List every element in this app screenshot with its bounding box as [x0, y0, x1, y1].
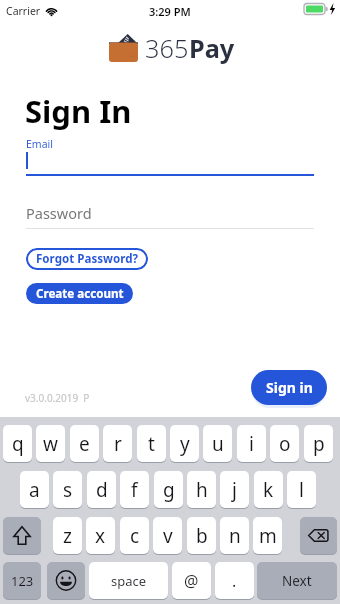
staticText: f: [131, 477, 138, 503]
staticText: Sign In: [25, 90, 132, 132]
staticText: Email: [26, 137, 53, 151]
button[interactable]: m: [253, 517, 282, 554]
button[interactable]: k: [254, 471, 283, 508]
staticText: w: [43, 431, 58, 457]
staticText: b: [196, 523, 208, 549]
staticText: .: [232, 570, 237, 592]
staticText: @: [184, 570, 199, 592]
button[interactable]: b: [187, 517, 216, 554]
staticText: c: [130, 523, 140, 549]
staticText: Carrier: [6, 4, 41, 18]
button[interactable]: .: [215, 562, 254, 599]
staticText: v3.0.0.2019 P: [25, 391, 90, 404]
button[interactable]: a: [20, 471, 49, 508]
staticText: i: [249, 431, 254, 457]
staticText: 3:29 PM: [149, 4, 191, 19]
staticText: g: [163, 477, 175, 503]
button[interactable]: Backspace: [300, 517, 337, 554]
button[interactable]: space: [89, 562, 168, 599]
button[interactable]: Sign in: [251, 370, 327, 405]
button[interactable]: c: [120, 517, 149, 554]
button[interactable]: 123: [3, 562, 41, 599]
staticText: 123: [11, 572, 34, 590]
button[interactable]: Email: [26, 134, 314, 176]
button[interactable]: q: [3, 425, 32, 462]
staticText: z: [63, 523, 72, 549]
button[interactable]: Next: [257, 562, 337, 599]
staticText: k: [263, 477, 274, 503]
staticText: y: [180, 431, 190, 457]
button[interactable]: y: [170, 425, 199, 462]
staticText: p: [313, 431, 325, 457]
button[interactable]: x: [86, 517, 115, 554]
button[interactable]: l: [287, 471, 316, 508]
button[interactable]: h: [187, 471, 216, 508]
staticText: l: [299, 477, 304, 503]
staticText: u: [212, 431, 224, 457]
staticText: a: [29, 477, 40, 503]
button[interactable]: o: [270, 425, 299, 462]
button[interactable]: Forgot Password?: [26, 248, 148, 270]
button[interactable]: v: [153, 517, 182, 554]
staticText: Sign in: [266, 378, 313, 397]
button[interactable]: d: [87, 471, 116, 508]
button[interactable]: u: [203, 425, 232, 462]
button[interactable]: t: [137, 425, 166, 462]
button[interactable]: z: [53, 517, 82, 554]
button[interactable]: Emoji: [47, 562, 85, 599]
staticText: Forgot Password?: [36, 251, 139, 267]
staticText: r: [114, 431, 122, 457]
button[interactable]: e: [70, 425, 99, 462]
button[interactable]: g: [154, 471, 183, 508]
button[interactable]: n: [220, 517, 249, 554]
staticText: d: [96, 477, 108, 503]
button[interactable]: i: [237, 425, 266, 462]
staticText: 365: [145, 31, 189, 65]
button[interactable]: f: [120, 471, 149, 508]
staticText: o: [279, 431, 291, 457]
staticText: Pay: [189, 31, 235, 65]
button[interactable]: j: [220, 471, 249, 508]
staticText: n: [229, 523, 241, 549]
staticText: t: [148, 431, 155, 457]
button[interactable]: @: [172, 562, 211, 599]
staticText: Next: [282, 572, 312, 590]
staticText: Create account: [36, 286, 124, 302]
staticText: q: [12, 431, 24, 457]
staticText: e: [79, 431, 90, 457]
button[interactable]: r: [103, 425, 132, 462]
button[interactable]: w: [36, 425, 65, 462]
staticText: space: [111, 572, 147, 590]
button[interactable]: Shift: [3, 517, 41, 554]
staticText: s: [63, 477, 73, 503]
button[interactable]: s: [53, 471, 82, 508]
button[interactable]: Create account: [26, 283, 133, 304]
button[interactable]: p: [304, 425, 333, 462]
staticText: h: [196, 477, 208, 503]
staticText: v: [163, 523, 173, 549]
staticText: Password: [26, 203, 92, 223]
staticText: x: [95, 523, 106, 549]
staticText: j: [232, 477, 237, 503]
staticText: m: [259, 523, 277, 549]
button[interactable]: Password: [26, 200, 314, 230]
